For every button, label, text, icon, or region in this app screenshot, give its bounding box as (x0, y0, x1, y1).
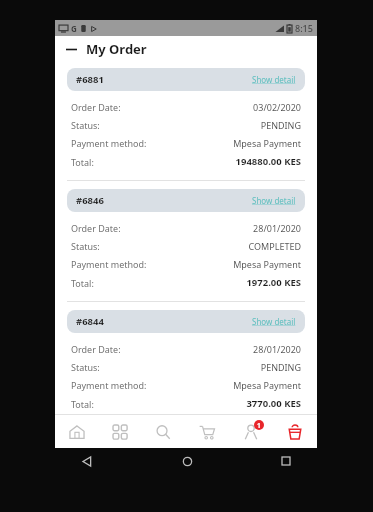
button[interactable]: Show detail (252, 195, 296, 206)
button[interactable]: Menu (61, 39, 81, 59)
staticText: Order Date: (71, 101, 121, 113)
button[interactable]: #6881 (67, 68, 305, 189)
staticText: Mpesa Payment (233, 137, 301, 149)
button[interactable]: Home (55, 415, 98, 448)
staticText: 03/02/2020 (253, 101, 301, 113)
staticText: 3770.00 KES (246, 397, 301, 410)
button[interactable]: Account (229, 415, 273, 448)
staticText: COMPLETED (248, 240, 301, 252)
staticText: 8:15 (295, 22, 313, 34)
staticText: Order Date: (71, 343, 121, 355)
staticText: Total: (71, 398, 94, 410)
staticText: 1 (257, 421, 261, 430)
staticText: Payment method: (71, 379, 147, 391)
staticText: Show detail (252, 316, 296, 327)
staticText: Status: (71, 361, 100, 373)
staticText: #6844 (76, 315, 104, 328)
staticText: Mpesa Payment (233, 258, 301, 270)
button[interactable]: Search (141, 415, 185, 448)
button[interactable]: Orders (273, 415, 317, 448)
staticText: #6846 (76, 194, 104, 207)
staticText: My Order (86, 40, 147, 58)
button[interactable]: Recents (273, 448, 299, 474)
button[interactable]: Back (74, 448, 100, 474)
staticText: Show detail (252, 195, 296, 206)
staticText: Mpesa Payment (233, 379, 301, 391)
button[interactable]: Categories (98, 415, 141, 448)
staticText: Show detail (252, 74, 296, 85)
staticText: Total: (71, 156, 94, 168)
staticText: Payment method: (71, 137, 147, 149)
staticText: Status: (71, 240, 100, 252)
staticText: G (71, 23, 77, 34)
staticText: 28/01/2020 (253, 343, 301, 355)
button[interactable]: Show detail (252, 316, 296, 327)
staticText: #6881 (76, 73, 104, 86)
button[interactable]: Show detail (252, 74, 296, 85)
staticText: 194880.00 KES (235, 155, 301, 168)
staticText: PENDING (260, 119, 301, 131)
button[interactable]: #6844 (67, 310, 305, 414)
staticText: PENDING (260, 361, 301, 373)
staticText: Order Date: (71, 222, 121, 234)
staticText: 28/01/2020 (253, 222, 301, 234)
staticText: Status: (71, 119, 100, 131)
button[interactable]: Cart (185, 415, 229, 448)
staticText: 1972.00 KES (246, 276, 301, 289)
button[interactable]: Home (174, 448, 200, 474)
button[interactable]: #6846 (67, 189, 305, 310)
staticText: Total: (71, 277, 94, 289)
staticText: Payment method: (71, 258, 147, 270)
